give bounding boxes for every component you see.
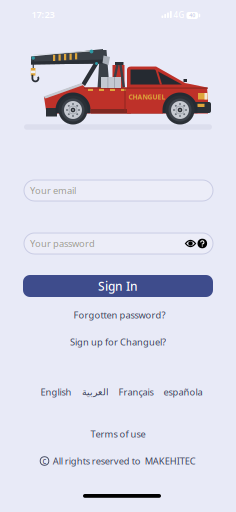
staticText: 17:23 [31, 8, 54, 21]
button[interactable]: Sign In [23, 275, 213, 297]
staticText: All rights reserved to [53, 455, 141, 467]
button[interactable]: العربية [81, 387, 108, 397]
staticText: العربية [81, 387, 108, 397]
button[interactable]: Forgotten password? [73, 309, 165, 321]
staticText: c [42, 456, 46, 466]
button[interactable]: Password help [197, 238, 207, 248]
staticText: Your email [30, 184, 76, 197]
staticText: Sign In [98, 278, 138, 294]
button[interactable]: Terms of use [90, 428, 145, 440]
button[interactable]: Show password [183, 236, 197, 250]
staticText: MAKEHITEC [145, 455, 196, 467]
button[interactable]: Sign up for Changuel? [70, 336, 166, 348]
staticText: 4G [173, 10, 184, 20]
staticText: Sign up for Changuel? [70, 336, 166, 348]
staticText: Français [118, 386, 153, 398]
button[interactable]: española [163, 386, 202, 398]
staticText: 40 [189, 12, 195, 19]
staticText: Forgotten password? [73, 309, 165, 321]
button[interactable]: English [40, 386, 71, 398]
staticText: English [40, 386, 71, 398]
textField[interactable]: Your password [30, 237, 160, 250]
staticText: Your password [30, 237, 95, 250]
staticText: española [163, 386, 202, 398]
button[interactable]: Français [118, 386, 153, 398]
textField[interactable]: Your email [30, 184, 180, 197]
staticText: Terms of use [90, 428, 145, 440]
staticText: CHANGUEL [128, 92, 165, 101]
